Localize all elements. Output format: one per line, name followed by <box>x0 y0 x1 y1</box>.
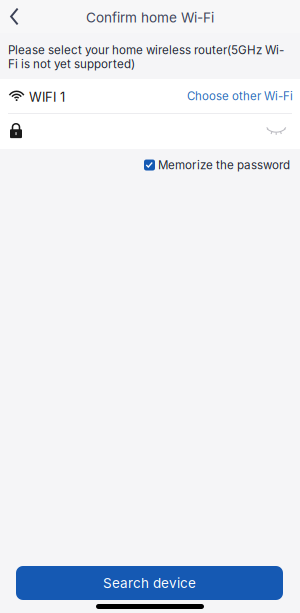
staticText: Choose other Wi-Fi <box>187 89 293 103</box>
staticText: Search device <box>103 575 196 591</box>
staticText: Memorize the password <box>158 158 290 172</box>
staticText: Please select your home wireless router(… <box>8 43 284 71</box>
button[interactable]: Back <box>0 2 31 30</box>
staticText: WIFI 1 <box>29 89 65 105</box>
button[interactable]: Choose other Wi-Fi <box>187 89 293 103</box>
button[interactable]: Show password <box>262 119 291 143</box>
button[interactable]: Memorize the password <box>144 154 290 176</box>
button[interactable]: Search device <box>16 566 283 600</box>
staticText: Confirm home Wi-Fi <box>86 9 214 26</box>
